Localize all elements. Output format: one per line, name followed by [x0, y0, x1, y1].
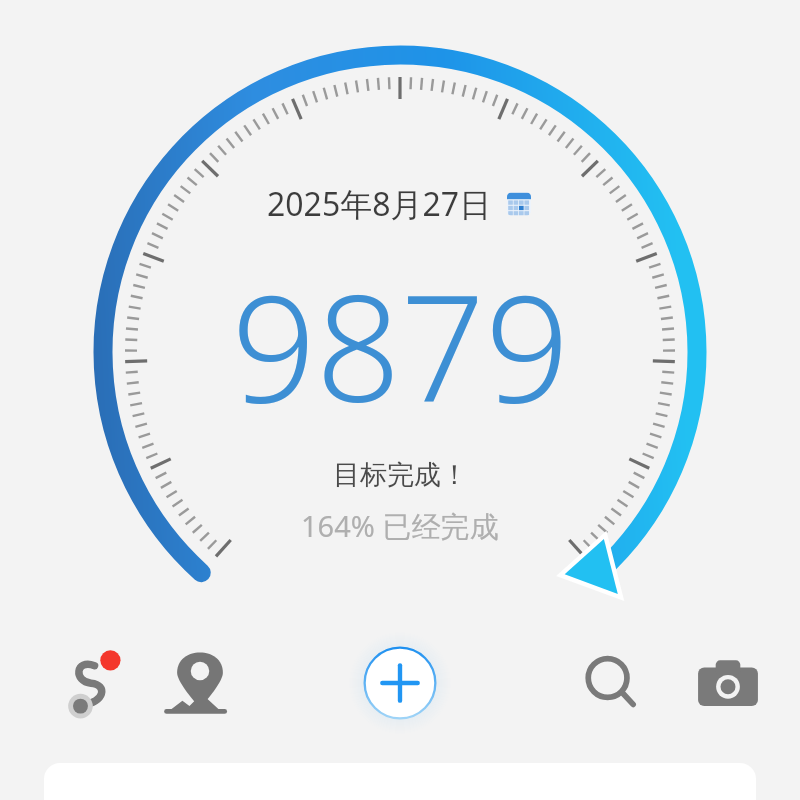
- other: Calendar: [504, 189, 534, 219]
- button[interactable]: Add: [348, 633, 452, 733]
- button[interactable]: Map: [156, 641, 244, 729]
- button[interactable]: Tracks: [40, 641, 128, 729]
- staticText: 9879: [231, 244, 570, 446]
- button[interactable]: Camera: [684, 641, 772, 729]
- staticText: 目标完成！: [333, 458, 468, 492]
- staticText: 164% 已经完成: [301, 506, 499, 546]
- button[interactable]: Search: [568, 641, 656, 729]
- button[interactable]: 2025年8月27日: [267, 182, 534, 226]
- staticText: 2025年8月27日: [267, 182, 492, 226]
